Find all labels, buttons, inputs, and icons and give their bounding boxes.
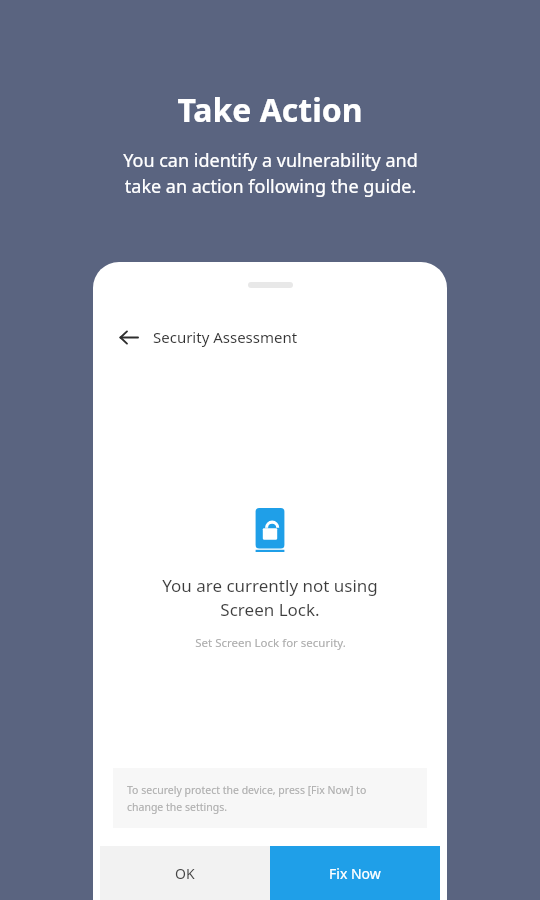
button[interactable]: Back bbox=[108, 317, 148, 357]
staticText: To securely protect the device, press [F… bbox=[127, 783, 367, 814]
staticText: You can identify a vulnerability and tak… bbox=[123, 148, 418, 199]
staticText: OK bbox=[175, 864, 195, 883]
staticText: Take Action bbox=[177, 88, 363, 132]
staticText: Security Assessment bbox=[153, 327, 298, 347]
staticText: Fix Now bbox=[329, 864, 381, 883]
staticText: Set Screen Lock for security. bbox=[195, 635, 346, 651]
button[interactable]: OK bbox=[100, 846, 270, 900]
staticText: You are currently not using Screen Lock. bbox=[162, 574, 378, 621]
button[interactable]: Fix Now bbox=[270, 846, 440, 900]
